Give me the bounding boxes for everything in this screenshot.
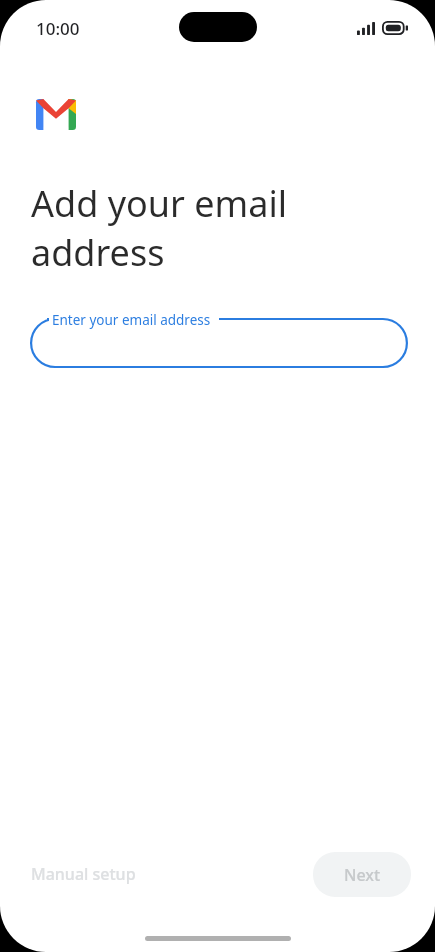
staticText: address — [31, 228, 165, 277]
button[interactable]: Manual setup — [0, 852, 154, 896]
staticText: Next — [344, 864, 381, 886]
staticText: Enter your email address — [52, 311, 211, 329]
other: Gmail — [36, 99, 76, 130]
button[interactable]: Next — [313, 852, 411, 897]
staticText: Add your email — [31, 179, 287, 228]
staticText: 10:00 — [36, 17, 80, 40]
staticText: Manual setup — [31, 863, 136, 885]
button[interactable]: Enter your email address — [30, 305, 408, 381]
